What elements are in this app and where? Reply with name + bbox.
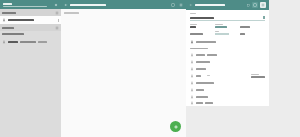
button[interactable]: Filter	[170, 2, 175, 7]
button[interactable]: Add	[170, 121, 181, 132]
button[interactable]: Share	[246, 3, 250, 7]
button[interactable]	[190, 93, 265, 100]
button[interactable]	[190, 65, 265, 72]
button[interactable]	[0, 24, 61, 31]
button[interactable]	[0, 38, 61, 45]
button[interactable]	[190, 100, 265, 106]
button[interactable]	[0, 9, 61, 16]
button[interactable]: More options	[178, 2, 183, 7]
button[interactable]	[190, 51, 265, 58]
button[interactable]	[190, 38, 265, 45]
button[interactable]	[190, 72, 265, 79]
button[interactable]	[0, 16, 61, 24]
button[interactable]	[190, 79, 265, 86]
button[interactable]: Edit	[252, 2, 258, 8]
button[interactable]	[190, 58, 265, 65]
button[interactable]: Add	[53, 2, 58, 7]
button[interactable]: Menu	[260, 2, 266, 8]
button[interactable]	[190, 86, 265, 93]
